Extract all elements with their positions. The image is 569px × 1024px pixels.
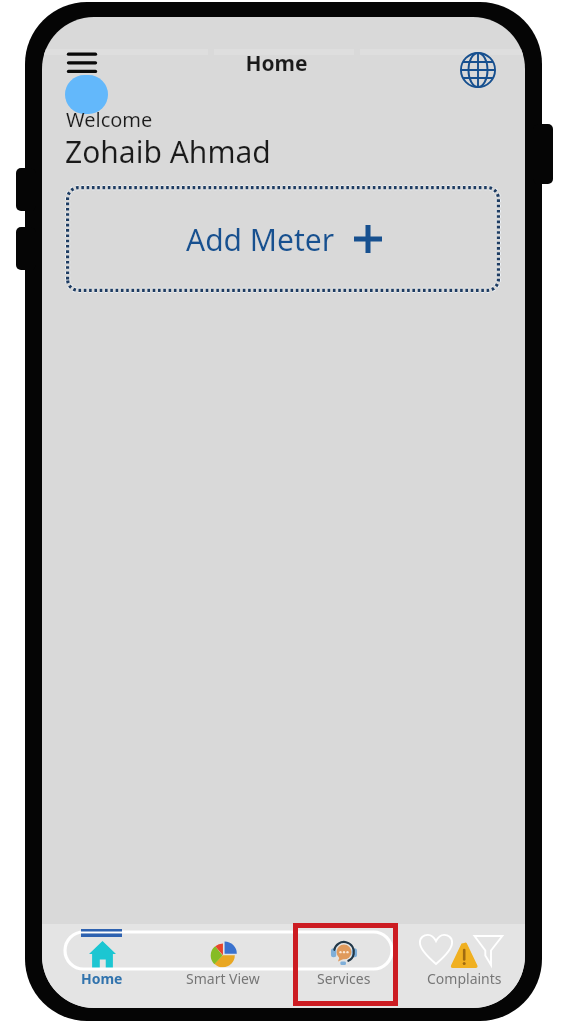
button[interactable]: Language xyxy=(454,46,502,94)
button[interactable]: Profile xyxy=(65,75,108,114)
staticText: Smart View xyxy=(186,969,260,988)
button[interactable]: Complaints xyxy=(404,924,525,1008)
staticText: Services xyxy=(317,969,371,988)
staticText: Add Meter xyxy=(186,219,335,260)
button[interactable]: Smart View xyxy=(162,924,283,1008)
button[interactable]: Menu xyxy=(60,40,104,84)
button[interactable]: Services xyxy=(283,924,404,1008)
staticText: Zohaib Ahmad xyxy=(65,131,271,172)
staticText: Home xyxy=(81,969,123,988)
button[interactable]: Home xyxy=(42,924,162,1008)
staticText: Complaints xyxy=(427,969,502,988)
button[interactable]: Add Meter xyxy=(66,186,500,292)
staticText: Home xyxy=(42,49,518,78)
staticText: Welcome xyxy=(66,106,153,133)
